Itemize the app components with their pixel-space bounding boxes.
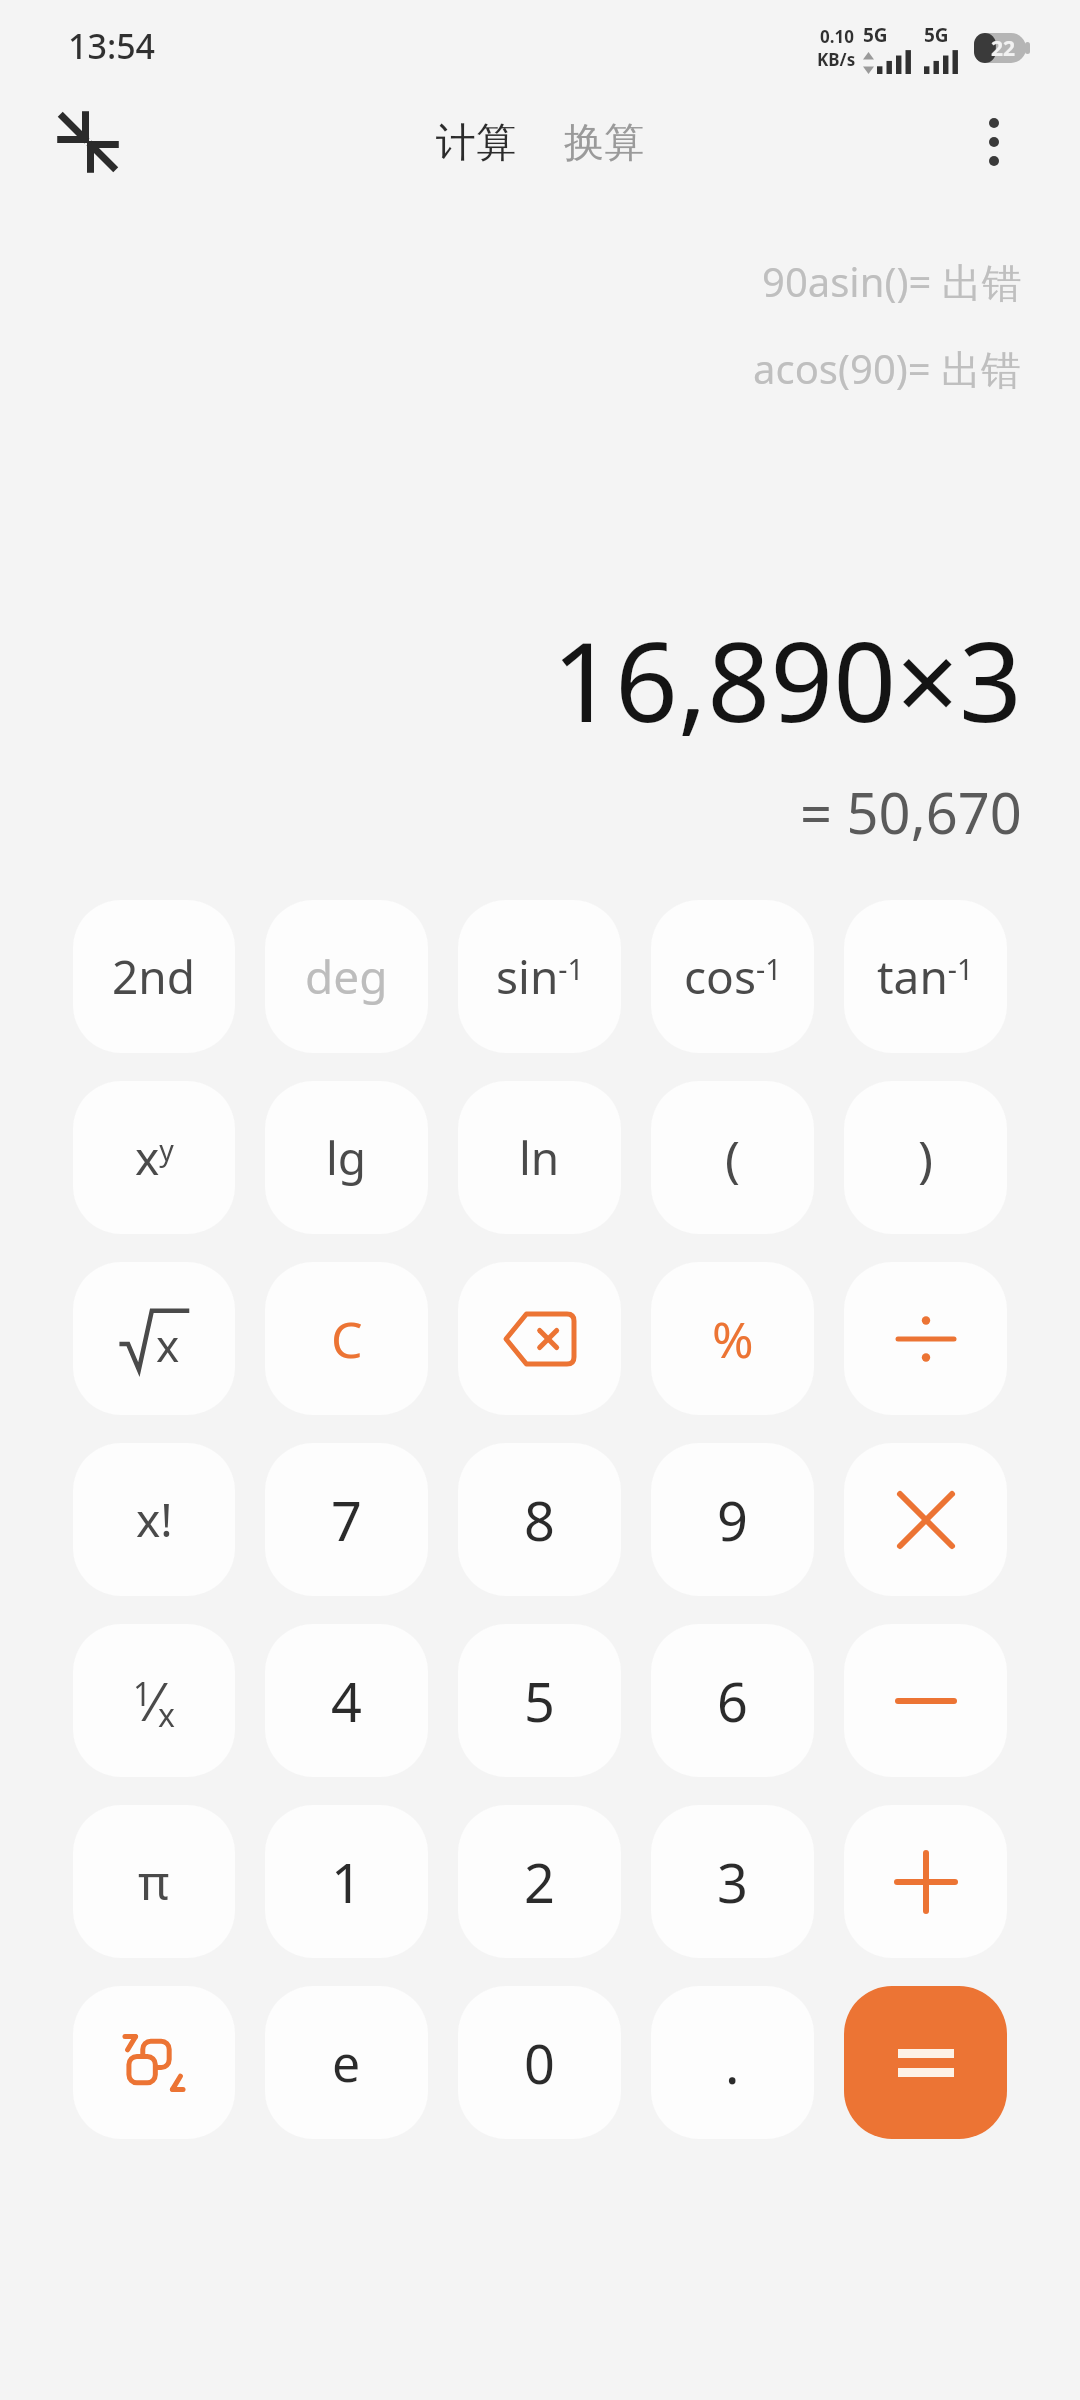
staticText: 22 [991,34,1016,63]
button[interactable]: 7 [265,1443,428,1596]
staticText: 6 [717,1664,748,1738]
button[interactable]: 2 [458,1805,621,1958]
staticText: tan-1 [877,945,974,1008]
button[interactable]: lg [265,1081,428,1234]
button[interactable]: π [73,1805,235,1958]
staticText: 1⁄x [133,1665,175,1736]
button[interactable]: 换算 [554,111,654,173]
staticText: 5G [863,22,888,48]
button[interactable]: % [651,1262,814,1415]
button[interactable]: ln [458,1081,621,1234]
staticText: acos(90)= 出错 [753,341,1022,396]
staticText: 90asin()= 出错 [762,254,1022,309]
staticText: 4 [331,1664,362,1738]
button[interactable]: 9 [651,1443,814,1596]
button[interactable]: 4 [265,1624,428,1777]
staticText: e [332,2029,361,2097]
staticText: 9 [717,1483,748,1557]
button[interactable]: Plus [844,1805,1007,1958]
staticText: cos-1 [684,945,782,1008]
button[interactable]: 2nd [73,900,235,1053]
staticText: 5G [924,22,949,48]
staticText: 2 [524,1845,555,1919]
staticText: x! [136,1488,173,1551]
button[interactable]: Collapse [46,100,130,184]
button[interactable]: 5 [458,1624,621,1777]
staticText: π [138,1849,170,1914]
button[interactable]: Minus [844,1624,1007,1777]
staticText: ) [918,1124,933,1192]
button[interactable]: ( [651,1081,814,1234]
staticText: ( [725,1124,740,1192]
staticText: lg [326,1126,367,1189]
staticText: deg [305,945,388,1008]
button[interactable]: deg [265,900,428,1053]
button[interactable]: cos-1 [651,900,814,1053]
staticText: xy [135,1126,174,1189]
button[interactable]: More options [956,104,1032,180]
button[interactable]: Backspace [458,1262,621,1415]
button[interactable]: xy [73,1081,235,1234]
staticText: 8 [524,1483,555,1557]
button[interactable]: 计算 [426,111,526,173]
staticText: 7 [331,1483,362,1557]
button[interactable]: Square root [73,1262,235,1415]
button[interactable]: ) [844,1081,1007,1234]
button[interactable]: 0 [458,1986,621,2139]
staticText: C [331,1305,363,1373]
staticText: x [156,1315,180,1375]
button[interactable]: . [651,1986,814,2139]
button[interactable]: sin-1 [458,900,621,1053]
staticText: 换算 [564,117,644,167]
staticText: 3 [717,1845,748,1919]
staticText: sin-1 [496,945,584,1008]
staticText: 5 [524,1664,555,1738]
staticText: . [725,2026,740,2100]
staticText: 0 [524,2026,555,2100]
button[interactable]: 1 [265,1805,428,1958]
button[interactable]: 8 [458,1443,621,1596]
button[interactable]: x! [73,1443,235,1596]
staticText: 2nd [112,945,196,1008]
button[interactable]: C [265,1262,428,1415]
button[interactable]: Equals [844,1986,1007,2139]
staticText: ln [519,1126,560,1189]
button[interactable]: 6 [651,1624,814,1777]
staticText: 0.10 [820,25,854,48]
staticText: % [712,1305,754,1373]
button[interactable]: Reciprocal [73,1624,235,1777]
button[interactable]: 3 [651,1805,814,1958]
button[interactable]: tan-1 [844,900,1007,1053]
staticText: 计算 [436,117,516,167]
staticText: 16,890×3 [552,604,1022,754]
button[interactable]: Convert [73,1986,235,2139]
staticText: KB/s [817,48,856,71]
staticText: 13:54 [68,23,156,69]
button[interactable]: Multiply [844,1443,1007,1596]
button[interactable]: Divide [844,1262,1007,1415]
staticText: = 50,670 [800,774,1022,850]
staticText: 1 [331,1845,362,1919]
button[interactable]: e [265,1986,428,2139]
